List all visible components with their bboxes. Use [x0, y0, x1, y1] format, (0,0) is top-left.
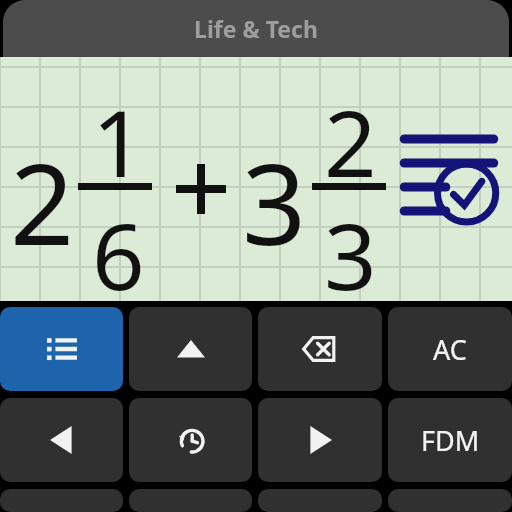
button[interactable]: AC	[388, 307, 512, 391]
staticText: 2	[324, 79, 377, 204]
button[interactable]: Key	[388, 489, 512, 512]
button[interactable]: Verified list	[398, 123, 502, 223]
staticText: Life & Tech	[194, 13, 318, 44]
staticText: 6	[92, 192, 145, 317]
button[interactable]: Backspace	[258, 307, 382, 391]
button[interactable]: FDM	[388, 398, 512, 482]
button[interactable]: Up	[129, 307, 252, 391]
button[interactable]: Right	[258, 398, 382, 482]
staticText: 3	[324, 192, 377, 317]
button[interactable]: History	[129, 398, 252, 482]
button[interactable]: Key	[129, 489, 252, 512]
staticText: 2	[10, 125, 75, 278]
button[interactable]: Key	[258, 489, 382, 512]
staticText: FDM	[421, 422, 480, 459]
staticText: 1	[92, 79, 145, 204]
staticText: 3	[242, 125, 307, 278]
button[interactable]: Menu	[0, 307, 123, 391]
staticText: AC	[433, 331, 467, 368]
button[interactable]: Left	[0, 398, 123, 482]
button[interactable]: Key	[0, 489, 123, 512]
